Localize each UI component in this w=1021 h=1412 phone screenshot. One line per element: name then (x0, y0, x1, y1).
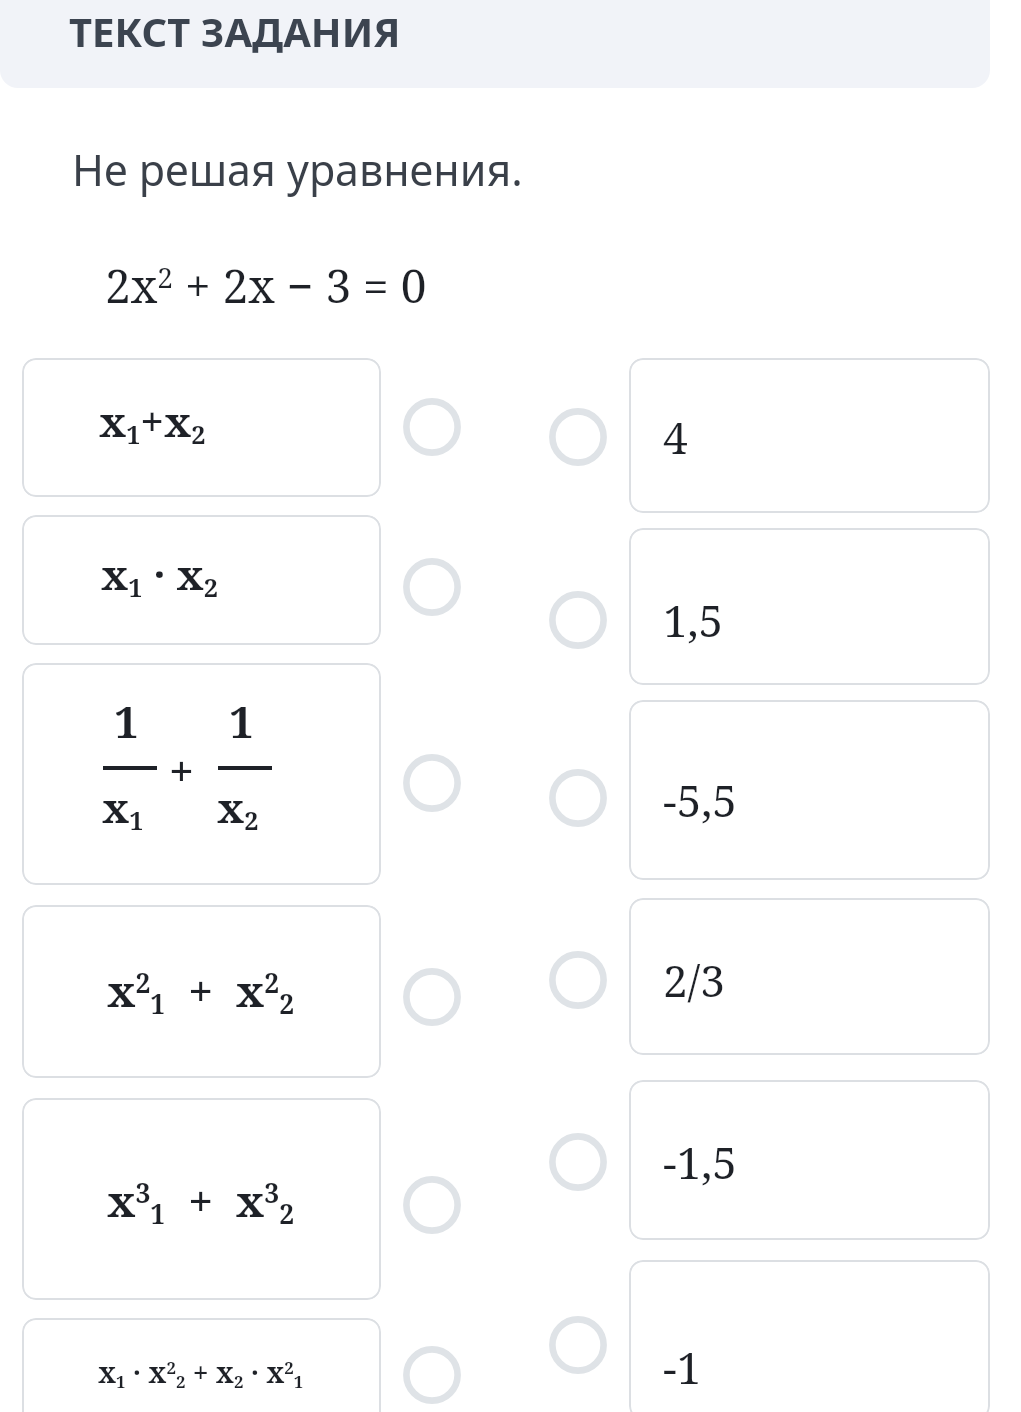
staticText: 4 (663, 407, 688, 467)
staticText: x1 · x22 + x2 · x21 (98, 1353, 304, 1393)
staticText: 1,5 (663, 590, 724, 650)
button[interactable]: Select x1 cubed plus x2 cubed (403, 1176, 461, 1234)
staticText: 2/3 (663, 950, 725, 1010)
staticText: -5,5 (663, 770, 737, 830)
staticText: x1 (102, 778, 144, 837)
button[interactable]: Select -5,5 (549, 769, 607, 827)
button[interactable]: 2/3 (629, 898, 990, 1055)
button[interactable]: 1,5 (629, 528, 990, 685)
button[interactable]: -5,5 (629, 700, 990, 880)
button[interactable]: -1 (629, 1260, 990, 1412)
staticText: -1 (663, 1337, 702, 1397)
staticText: 1 (229, 691, 254, 751)
staticText: -1,5 (663, 1132, 737, 1192)
button[interactable]: x1 times x2 (22, 515, 381, 645)
button[interactable]: 4 (629, 358, 990, 513)
button[interactable]: x1 squared plus x2 squared (22, 905, 381, 1078)
staticText: Не решая уравнения. (72, 140, 523, 199)
button[interactable]: Select x1 squared plus x2 squared (403, 968, 461, 1026)
button[interactable]: 1 over x1 plus 1 over x2 (22, 663, 381, 885)
staticText: 2x2 + 2x − 3 = 0 (105, 254, 427, 317)
button[interactable]: Select x1 times x2 (403, 558, 461, 616)
staticText: x1+x2 (99, 392, 206, 451)
staticText: + (169, 740, 194, 800)
button[interactable]: Select 1,5 (549, 591, 607, 649)
button[interactable]: Select 1 over x1 plus 1 over x2 (403, 754, 461, 812)
button[interactable]: Select 4 (549, 408, 607, 466)
button[interactable]: x1 cubed plus x2 cubed (22, 1098, 381, 1300)
button[interactable]: x1 x2 squared plus x2 x1 squared (22, 1318, 381, 1412)
button[interactable]: Select 2/3 (549, 951, 607, 1009)
button[interactable]: -1,5 (629, 1080, 990, 1240)
staticText: 1 (114, 691, 139, 751)
staticText: x1 · x2 (101, 545, 218, 604)
staticText: ТЕКСТ ЗАДАНИЯ (69, 4, 401, 58)
button[interactable]: Select -1 (549, 1316, 607, 1374)
button[interactable]: Select -1,5 (549, 1133, 607, 1191)
staticText: x31 + x32 (107, 1170, 295, 1232)
staticText: x21 + x22 (107, 960, 295, 1022)
button[interactable]: x1 + x2 (22, 358, 381, 497)
button[interactable]: Select x1 plus x2 (403, 398, 461, 456)
button[interactable]: Select x1 x2 squared plus x2 x1 squared (403, 1346, 461, 1404)
staticText: x2 (217, 778, 259, 837)
